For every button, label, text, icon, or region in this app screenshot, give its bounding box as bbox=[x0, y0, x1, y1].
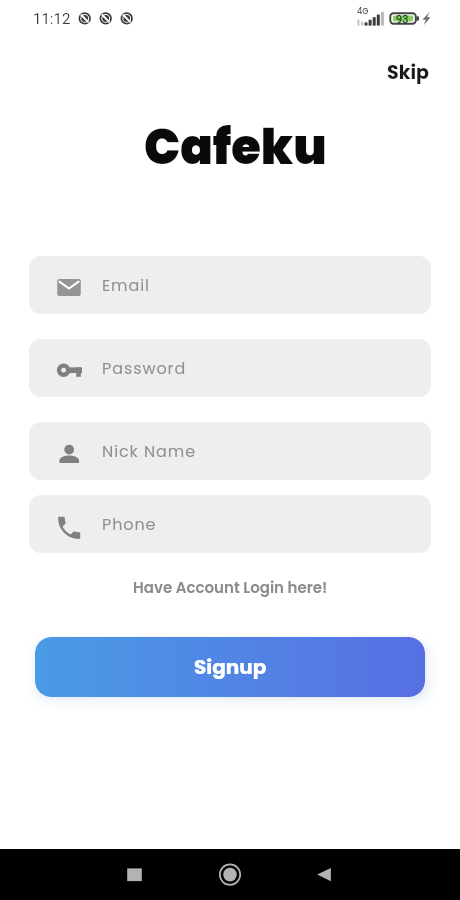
staticText: Cafeku bbox=[144, 114, 327, 181]
staticText: Nick Name bbox=[102, 440, 196, 462]
button[interactable]: Skip bbox=[382, 55, 434, 90]
button[interactable]: Email bbox=[29, 256, 431, 314]
button[interactable]: Phone bbox=[29, 495, 431, 553]
staticText: Phone bbox=[102, 513, 157, 535]
button[interactable]: Recent apps bbox=[112, 849, 157, 900]
button[interactable]: Nick Name bbox=[29, 422, 431, 480]
staticText: Password bbox=[102, 357, 187, 379]
button[interactable]: Home bbox=[207, 849, 253, 900]
staticText: Have Account Login here! bbox=[133, 577, 328, 598]
staticText: 93 bbox=[396, 13, 409, 26]
staticText: Skip bbox=[387, 59, 429, 86]
button[interactable]: Signup bbox=[35, 637, 425, 697]
staticText: 4G bbox=[357, 6, 369, 17]
staticText: Signup bbox=[194, 653, 267, 681]
staticText: 11:12 bbox=[33, 10, 71, 28]
staticText: Email bbox=[102, 274, 150, 296]
button[interactable]: Password bbox=[29, 339, 431, 397]
button[interactable]: Back bbox=[302, 849, 348, 900]
button[interactable]: Have Account Login here! bbox=[125, 575, 336, 600]
